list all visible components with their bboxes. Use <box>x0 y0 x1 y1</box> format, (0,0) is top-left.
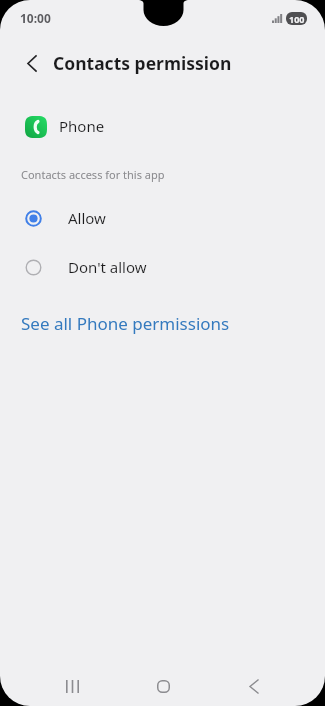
button[interactable]: Recent apps <box>49 666 95 706</box>
button[interactable]: Back <box>17 48 47 78</box>
staticText: Don't allow <box>68 257 147 277</box>
button[interactable]: Don't allow <box>0 243 325 292</box>
staticText: Phone <box>59 116 105 136</box>
button[interactable]: Allow <box>0 194 325 243</box>
staticText: Allow <box>68 208 106 228</box>
staticText: 10:00 <box>20 10 51 26</box>
staticText: See all Phone permissions <box>21 312 230 335</box>
staticText: Contacts access for this app <box>21 167 165 182</box>
button[interactable]: Back <box>231 666 277 706</box>
staticText: Contacts permission <box>53 51 232 75</box>
button[interactable]: Home <box>140 666 186 706</box>
button[interactable]: See all Phone permissions <box>0 308 325 339</box>
staticText: 100 <box>289 13 305 25</box>
